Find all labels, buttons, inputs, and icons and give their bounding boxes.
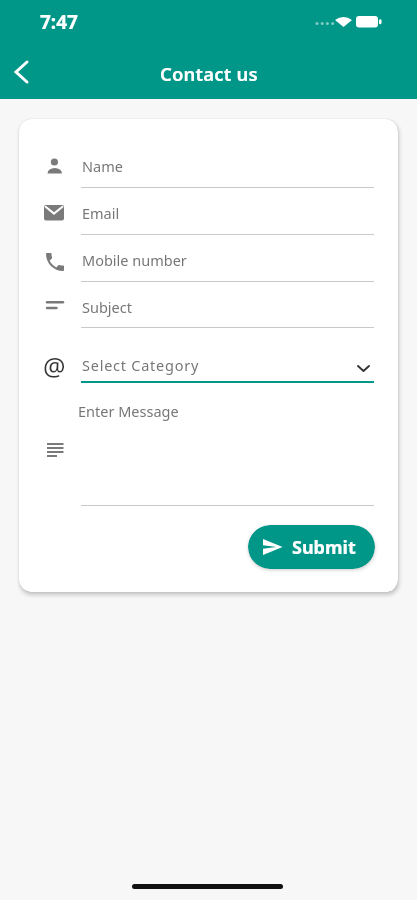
button[interactable]: [81, 143, 374, 188]
button[interactable]: Select Category: [81, 347, 393, 383]
button[interactable]: Submit: [248, 525, 375, 569]
button[interactable]: [4, 56, 40, 90]
button[interactable]: [81, 284, 374, 328]
button[interactable]: [81, 237, 374, 282]
staticText: Enter Message: [78, 401, 179, 421]
staticText: Submit: [292, 535, 356, 560]
staticText: Name: [82, 156, 123, 176]
staticText: @: [43, 349, 66, 383]
staticText: Mobile number: [82, 250, 187, 270]
button[interactable]: [81, 391, 374, 506]
staticText: 7:47: [40, 9, 78, 35]
staticText: Contact us: [160, 61, 258, 86]
staticText: Email: [82, 203, 120, 223]
staticText: Select Category: [82, 355, 200, 375]
staticText: Subject: [82, 297, 132, 317]
button[interactable]: [81, 190, 374, 235]
